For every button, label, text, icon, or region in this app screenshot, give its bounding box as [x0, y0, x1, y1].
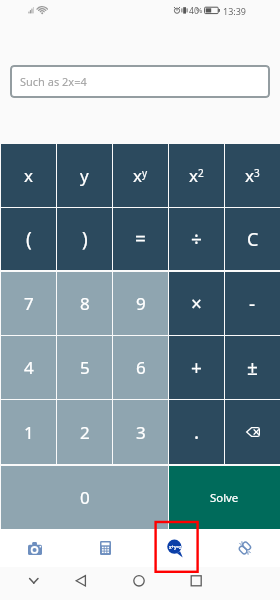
- button[interactable]: Such as 2x=4: [10, 65, 270, 98]
- button[interactable]: Solve: [169, 466, 280, 529]
- button[interactable]: 3: [113, 400, 168, 464]
- button[interactable]: ): [57, 208, 112, 270]
- button[interactable]: xy: [113, 144, 168, 207]
- staticText: 6: [136, 356, 146, 379]
- staticText: (: [26, 226, 32, 252]
- button[interactable]: ±: [225, 336, 280, 399]
- staticText: ÷: [191, 226, 202, 252]
- staticText: 7: [24, 292, 34, 315]
- staticText: 9: [136, 292, 146, 315]
- button[interactable]: 8: [57, 272, 112, 335]
- staticText: %: [196, 5, 203, 16]
- staticText: 4: [24, 356, 34, 379]
- staticText: 8: [80, 292, 90, 315]
- button[interactable]: =: [113, 208, 168, 270]
- button[interactable]: Calculator: [70, 529, 140, 567]
- button[interactable]: x3: [225, 144, 280, 207]
- button[interactable]: ÷: [169, 208, 224, 270]
- button[interactable]: 2: [57, 400, 112, 464]
- button[interactable]: 9: [113, 272, 168, 335]
- staticText: y: [80, 164, 89, 187]
- staticText: x3: [245, 164, 260, 187]
- button[interactable]: Backspace: [225, 400, 280, 464]
- button[interactable]: (: [1, 208, 56, 270]
- staticText: 13:39: [223, 5, 247, 17]
- button[interactable]: Camera: [0, 529, 70, 567]
- staticText: Solve: [210, 490, 239, 506]
- staticText: ×: [191, 291, 202, 317]
- button[interactable]: Equation solver: [140, 529, 210, 567]
- staticText: Such as 2x=4: [20, 74, 87, 89]
- staticText: +: [191, 355, 202, 381]
- staticText: x: [24, 164, 33, 187]
- button[interactable]: 4: [1, 336, 56, 399]
- button[interactable]: 0: [1, 466, 168, 529]
- button[interactable]: 1: [1, 400, 56, 464]
- staticText: =: [135, 226, 146, 252]
- staticText: C: [247, 227, 259, 252]
- staticText: 40: [189, 5, 199, 17]
- staticText: 0: [80, 486, 90, 509]
- button[interactable]: .: [169, 400, 224, 464]
- staticText: 5: [80, 356, 90, 379]
- button[interactable]: 5: [57, 336, 112, 399]
- staticText: x+y=z: [169, 544, 182, 550]
- button[interactable]: +: [169, 336, 224, 399]
- staticText: 1: [24, 421, 34, 444]
- button[interactable]: C: [225, 208, 280, 270]
- staticText: 2: [80, 421, 90, 444]
- button[interactable]: y: [57, 144, 112, 207]
- staticText: .: [194, 419, 200, 445]
- button[interactable]: -: [225, 272, 280, 335]
- staticText: xy: [133, 164, 148, 187]
- button[interactable]: Linked equations: [210, 529, 280, 567]
- staticText: ): [82, 226, 88, 252]
- button[interactable]: x: [1, 144, 56, 207]
- staticText: x2: [189, 164, 204, 187]
- button[interactable]: 7: [1, 272, 56, 335]
- staticText: -: [249, 291, 256, 317]
- button[interactable]: ×: [169, 272, 224, 335]
- staticText: ±: [247, 355, 258, 381]
- button[interactable]: x2: [169, 144, 224, 207]
- staticText: 3: [136, 421, 146, 444]
- button[interactable]: 6: [113, 336, 168, 399]
